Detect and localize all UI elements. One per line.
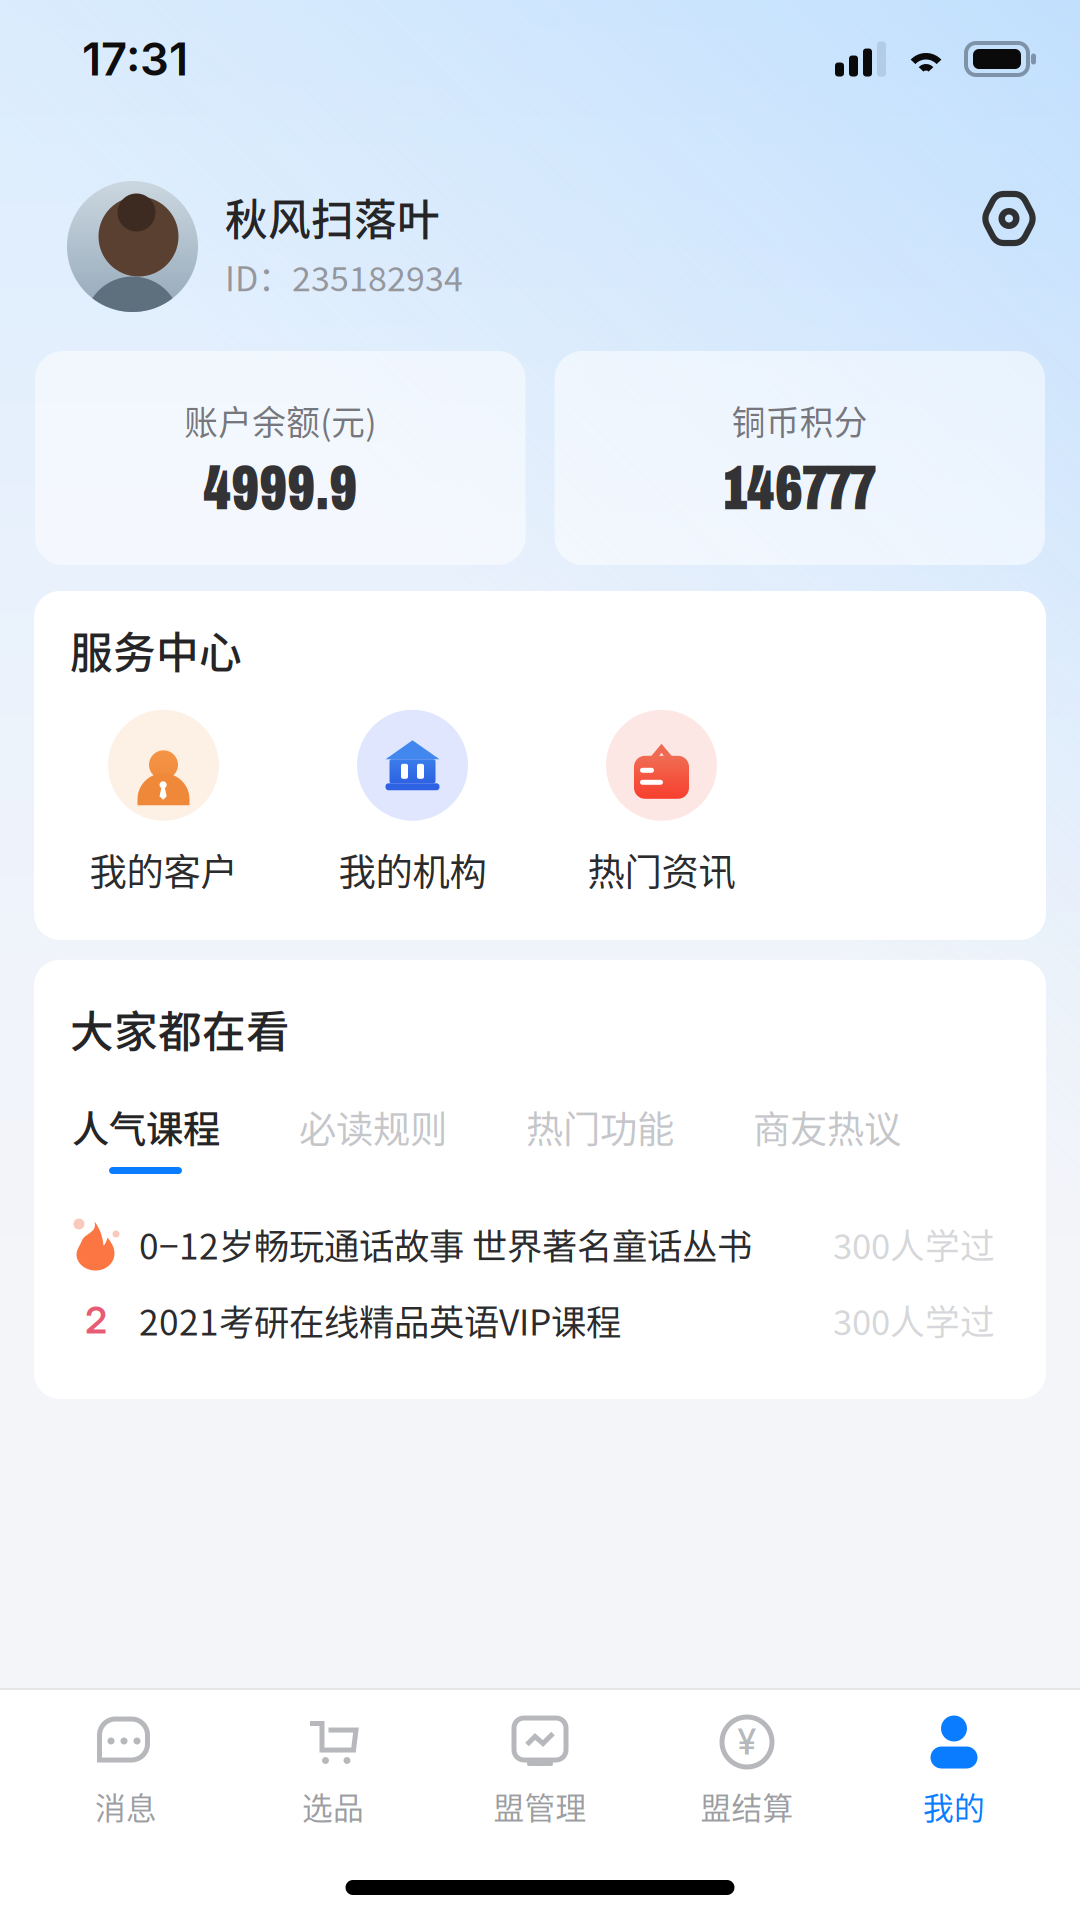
button[interactable]: 选品 — [229, 1690, 436, 1838]
staticText: 2021考研在线精品英语VIP课程 — [139, 1294, 621, 1346]
button[interactable]: 消息 — [22, 1690, 229, 1838]
button[interactable]: 商友热议 — [753, 1100, 980, 1174]
staticText: 17:31 — [82, 32, 188, 86]
button[interactable]: 盟管理 — [436, 1690, 643, 1838]
staticText: 秋风扫落叶 — [225, 186, 440, 248]
staticText: 2 — [85, 1297, 107, 1343]
staticText: 盟结算 — [700, 1784, 793, 1828]
button[interactable]: 热门资讯 — [537, 710, 786, 897]
staticText: 人气课程 — [72, 1100, 220, 1154]
staticText: 商友热议 — [753, 1100, 901, 1154]
staticText: 我的机构 — [338, 843, 486, 897]
button[interactable]: 0−12岁畅玩通话故事 世界著名童话丛书 — [34, 1206, 1046, 1282]
button[interactable]: 我的客户 — [39, 710, 288, 897]
staticText: 0−12岁畅玩通话故事 世界著名童话丛书 — [139, 1218, 752, 1270]
button[interactable]: 我的 — [850, 1690, 1057, 1838]
staticText: 消息 — [95, 1784, 157, 1828]
staticText: 300人学过 — [833, 1295, 995, 1345]
button[interactable]: ¥ — [643, 1690, 850, 1838]
staticText: 我的 — [923, 1784, 985, 1828]
button[interactable]: 账户余额(元) — [35, 351, 525, 565]
staticText: 服务中心 — [70, 619, 242, 681]
button[interactable]: 必读规则 — [299, 1100, 526, 1174]
staticText: 300人学过 — [833, 1219, 995, 1269]
button[interactable]: 人气课程 — [72, 1100, 299, 1174]
staticText: 我的客户 — [89, 843, 237, 897]
button[interactable]: 热门功能 — [526, 1100, 753, 1174]
staticText: 146777 — [724, 454, 876, 523]
staticText: 4999.9 — [203, 454, 357, 523]
staticText: 热门功能 — [526, 1100, 674, 1154]
button[interactable]: Settings — [954, 163, 1064, 329]
button[interactable]: 我的机构 — [288, 710, 537, 897]
staticText: 大家都在看 — [70, 997, 290, 1060]
button[interactable]: 铜币积分 — [554, 351, 1045, 565]
staticText: 必读规则 — [299, 1100, 447, 1154]
staticText: 盟管理 — [493, 1784, 586, 1828]
staticText: 选品 — [302, 1784, 364, 1828]
staticText: 铜币积分 — [732, 396, 868, 445]
staticText: ¥ — [737, 1721, 756, 1763]
staticText: ID：235182934 — [225, 252, 463, 301]
button[interactable]: 2 — [34, 1282, 1046, 1358]
staticText: 热门资讯 — [587, 843, 735, 897]
staticText: 账户余额(元) — [184, 396, 376, 445]
